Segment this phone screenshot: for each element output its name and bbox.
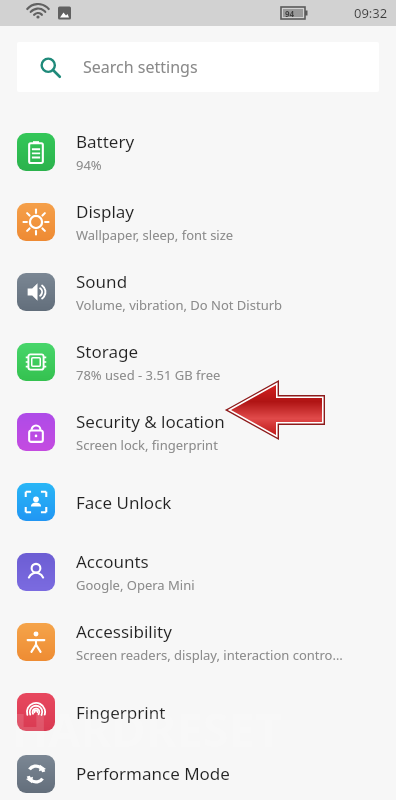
staticText: HARDRESET [12, 697, 283, 761]
staticText: Fingerprint [76, 701, 166, 724]
button[interactable]: Accounts [0, 537, 396, 607]
button[interactable]: Accessibility [0, 607, 396, 677]
staticText: 94 [285, 8, 295, 19]
button[interactable]: Display [0, 187, 396, 257]
staticText: Sound [76, 270, 128, 293]
button[interactable]: Performance Mode [0, 747, 396, 800]
staticText: Screen lock, fingerprint [76, 436, 218, 454]
staticText: Google, Opera Mini [76, 576, 195, 594]
button[interactable]: Battery [0, 117, 396, 187]
button[interactable]: Fingerprint [0, 677, 396, 747]
staticText: Volume, vibration, Do Not Disturb [76, 296, 283, 314]
staticText: 09:32 [354, 4, 388, 22]
button[interactable]: Storage [0, 327, 396, 397]
staticText: 78% used - 3.51 GB free [76, 366, 221, 384]
staticText: Performance Mode [76, 762, 230, 785]
staticText: Battery [76, 130, 135, 153]
staticText: Accounts [76, 550, 149, 573]
staticText: Accessibility [76, 620, 172, 643]
staticText: Screen readers, display, interaction con… [76, 646, 343, 664]
staticText: Search settings [83, 56, 198, 78]
staticText: 94% [76, 156, 102, 174]
staticText: Display [76, 200, 134, 223]
other: Highlight arrow pointing to Security and… [0, 0, 396, 800]
staticText: Storage [76, 340, 139, 363]
staticText: Face Unlock [76, 491, 172, 514]
button[interactable]: Search settings [17, 42, 379, 92]
button[interactable]: Face Unlock [0, 467, 396, 537]
staticText: Wallpaper, sleep, font size [76, 226, 234, 244]
staticText: Security & location [76, 410, 225, 433]
button[interactable]: Sound [0, 257, 396, 327]
button[interactable]: Security & location [0, 397, 396, 467]
